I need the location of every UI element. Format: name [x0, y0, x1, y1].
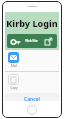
staticText: Web Site [25, 39, 38, 43]
button[interactable]: Key [7, 34, 57, 48]
button[interactable]: Home [27, 105, 37, 115]
button[interactable]: Open in browser [43, 36, 54, 47]
staticText: Copy [10, 86, 18, 90]
button[interactable]: Copy [5, 72, 59, 93]
staticText: Mail [11, 64, 17, 68]
button[interactable]: Key [10, 36, 21, 47]
staticText: Cancel [24, 96, 40, 101]
staticText: Kirby Login [6, 17, 58, 29]
button[interactable]: Cancel [5, 96, 59, 101]
button[interactable]: Mail [5, 50, 59, 71]
